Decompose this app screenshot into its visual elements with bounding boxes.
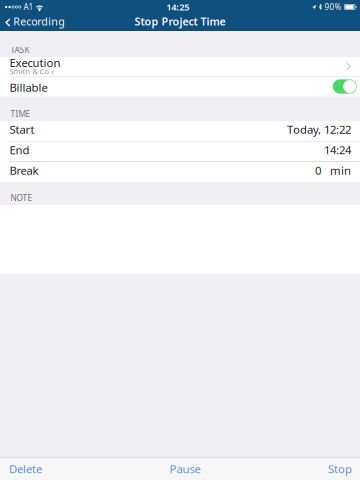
staticText: NOTE xyxy=(10,192,32,203)
button[interactable]: Execution xyxy=(0,57,360,76)
staticText: Stop Project Time xyxy=(134,14,225,28)
staticText: 14:25 xyxy=(166,1,189,13)
staticText: 90% xyxy=(324,2,341,12)
button[interactable]: Recording xyxy=(0,14,71,31)
button[interactable]: Billable xyxy=(0,76,360,96)
staticText: Start xyxy=(9,122,34,137)
button[interactable]: Start xyxy=(0,121,360,141)
staticText: Delete xyxy=(9,461,42,476)
button[interactable]: Delete xyxy=(0,458,51,480)
staticText: 14:24 xyxy=(324,142,351,157)
staticText: TASK xyxy=(10,44,29,55)
button[interactable]: Pause xyxy=(160,458,209,480)
staticText: Smith & Co / xyxy=(9,66,54,76)
staticText: 0 min xyxy=(315,163,351,178)
staticText: Break xyxy=(9,163,38,178)
button[interactable]: Break xyxy=(0,162,360,182)
staticText: End xyxy=(9,142,29,157)
staticText: Execution xyxy=(9,55,60,70)
button[interactable]: Stop xyxy=(319,458,360,480)
staticText: TIME xyxy=(10,108,30,119)
staticText: A1 xyxy=(23,2,33,12)
staticText: Stop xyxy=(328,461,352,476)
staticText: Recording xyxy=(13,14,65,28)
staticText: Today, 12:22 xyxy=(287,122,351,137)
button[interactable]: End xyxy=(0,141,360,161)
staticText: Pause xyxy=(169,461,200,476)
staticText: Billable xyxy=(9,80,47,95)
